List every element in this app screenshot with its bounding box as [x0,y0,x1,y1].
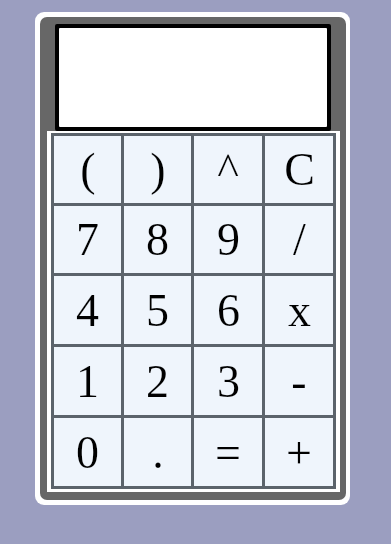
staticText: 6 [217,285,240,336]
staticText: x [288,285,311,336]
staticText: - [291,356,307,407]
button[interactable]: 1 [54,347,121,415]
button[interactable]: Decimal point [124,418,191,486]
staticText: C [284,144,315,195]
button[interactable]: Open parenthesis [54,136,121,203]
staticText: = [215,427,241,478]
button[interactable]: Minus [265,347,333,415]
staticText: ) [150,144,166,195]
staticText: 3 [217,356,240,407]
button[interactable]: 5 [124,276,191,344]
staticText: 0 [76,427,99,478]
button[interactable]: 3 [194,347,262,415]
staticText: / [293,214,306,265]
staticText: ^ [217,144,239,195]
button[interactable]: Divide [265,206,333,273]
staticText: 5 [146,285,169,336]
button[interactable]: Clear [265,136,333,203]
staticText: . [152,427,164,478]
button[interactable]: Equals [194,418,262,486]
staticText: 7 [76,214,99,265]
button[interactable]: 0 [54,418,121,486]
staticText: + [286,427,312,478]
staticText: 9 [217,214,240,265]
staticText: 4 [76,285,99,336]
button[interactable]: 4 [54,276,121,344]
staticText: 2 [146,356,169,407]
button[interactable]: Multiply [265,276,333,344]
staticText: 8 [146,214,169,265]
button[interactable]: Close parenthesis [124,136,191,203]
button[interactable]: 6 [194,276,262,344]
staticText: ( [80,144,96,195]
staticText: 1 [76,356,99,407]
button[interactable]: Power [194,136,262,203]
button[interactable]: Plus [265,418,333,486]
button[interactable]: 7 [54,206,121,273]
button[interactable]: 8 [124,206,191,273]
button[interactable]: 2 [124,347,191,415]
button[interactable]: 9 [194,206,262,273]
